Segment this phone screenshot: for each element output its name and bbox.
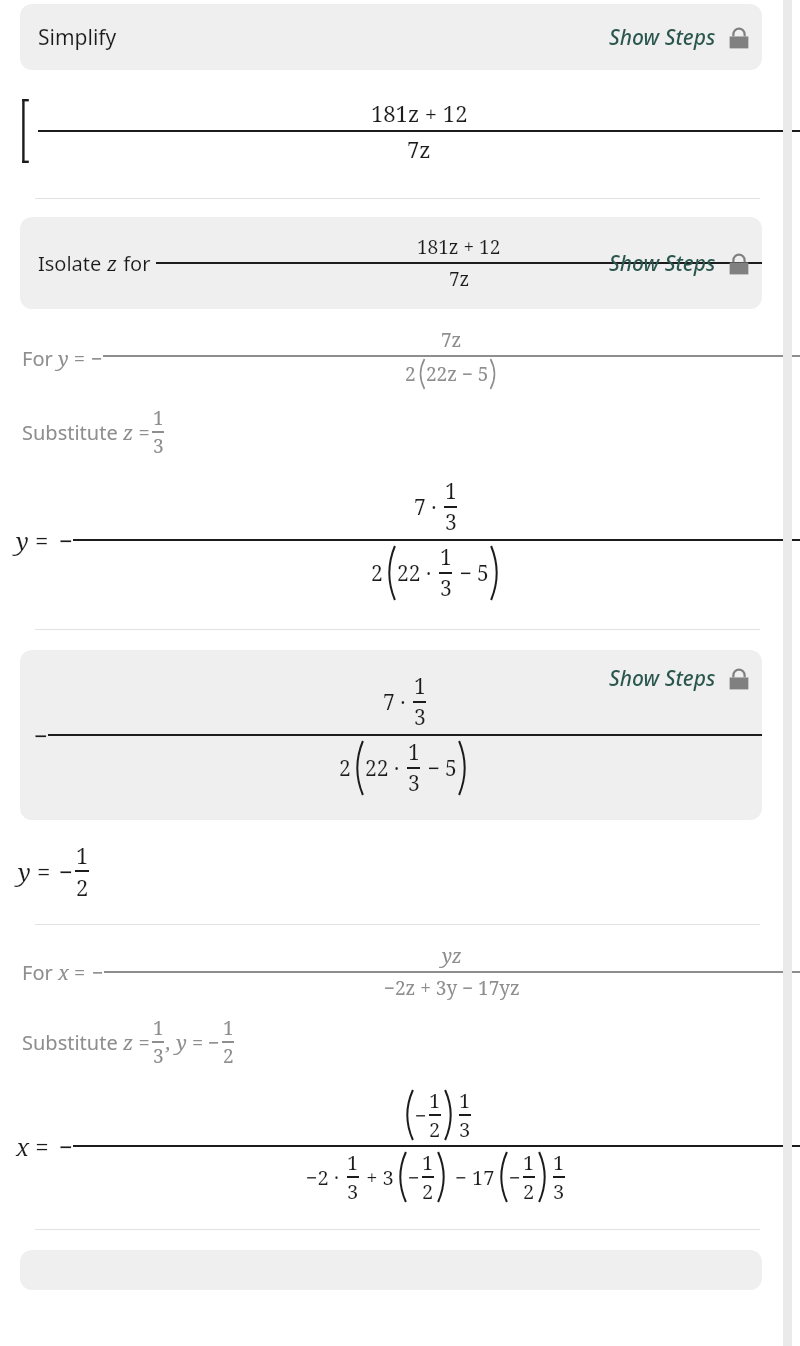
staticText: 22 · xyxy=(397,559,437,588)
other: Locked xyxy=(726,25,752,51)
staticText: − 5 xyxy=(422,754,457,783)
staticText: − xyxy=(408,1164,420,1191)
staticText: 7z xyxy=(441,327,462,353)
staticText: − xyxy=(59,524,73,557)
staticText: Substitute xyxy=(22,419,123,446)
staticText: 1 xyxy=(459,1087,471,1114)
staticText: yz xyxy=(442,943,462,969)
staticText: y = xyxy=(58,345,85,372)
staticText: + 3 xyxy=(361,1164,394,1191)
staticText: 7z xyxy=(407,134,431,164)
staticText: 2 xyxy=(405,361,416,387)
staticText: 2 xyxy=(429,1116,441,1143)
staticText: 181z + 12 xyxy=(417,234,501,260)
staticText: 2 xyxy=(223,1043,234,1069)
staticText: − xyxy=(208,1029,220,1056)
staticText: 1 xyxy=(76,840,89,870)
staticText: 1 xyxy=(153,1015,164,1041)
staticText: 3 xyxy=(347,1178,359,1205)
button[interactable]: Show Steps xyxy=(609,249,752,278)
staticText: 3 xyxy=(440,574,452,603)
staticText: 3 xyxy=(459,1116,471,1143)
staticText: x = xyxy=(58,959,86,986)
staticText: 1 xyxy=(422,1149,434,1176)
staticText: 3 xyxy=(153,433,164,459)
staticText: 181z + 12 xyxy=(371,98,468,128)
staticText: , y = xyxy=(166,1029,204,1056)
staticText: 3 xyxy=(153,1043,164,1069)
staticText: 2 xyxy=(371,559,383,588)
staticText: Show Steps xyxy=(609,23,716,52)
staticText: 22 · xyxy=(365,754,405,783)
staticText: y = xyxy=(16,524,49,557)
staticText: 1 xyxy=(223,1015,234,1041)
staticText: 1 xyxy=(408,738,420,767)
staticText: Simplify xyxy=(38,23,117,52)
staticText: 7 · xyxy=(383,688,411,717)
staticText: −2z + 3y − 17yz xyxy=(384,975,520,1001)
staticText: z = xyxy=(123,419,150,446)
staticText: − xyxy=(59,1130,73,1163)
staticText: 1 xyxy=(153,405,164,431)
staticText: Isolate xyxy=(38,250,107,277)
staticText: z = xyxy=(123,1029,150,1056)
staticText: For xyxy=(22,959,58,986)
staticText: 1 xyxy=(414,672,426,701)
staticText: 1 xyxy=(553,1149,565,1176)
staticText: 3 xyxy=(414,703,426,732)
staticText: 7z xyxy=(449,266,470,292)
staticText: − xyxy=(92,959,104,986)
staticText: 1 xyxy=(347,1149,359,1176)
staticText: z xyxy=(107,250,118,277)
staticText: Show Steps xyxy=(609,664,716,693)
button[interactable]: Simplify xyxy=(20,4,762,70)
staticText: 22z − 5 xyxy=(426,361,489,387)
staticText: − xyxy=(415,1102,427,1129)
staticText: y = xyxy=(18,855,51,888)
staticText: − 5 xyxy=(454,559,489,588)
staticText: 1 xyxy=(429,1087,441,1114)
staticText: 2 xyxy=(339,754,351,783)
staticText: For xyxy=(22,345,58,372)
button[interactable]: Isolate xyxy=(20,217,762,309)
staticText: Show Steps xyxy=(609,249,716,278)
staticText: 2 xyxy=(76,872,89,902)
staticText: − 17 xyxy=(450,1164,495,1191)
staticText: − xyxy=(34,719,48,752)
staticText: − xyxy=(59,855,73,888)
staticText: −2 · xyxy=(306,1164,345,1191)
button[interactable]: Show Steps xyxy=(609,664,752,693)
staticText: 3 xyxy=(553,1178,565,1205)
staticText: 1 xyxy=(440,543,452,572)
staticText: − xyxy=(91,345,103,372)
staticText: 3 xyxy=(408,769,420,798)
staticText: 7 · xyxy=(414,493,442,522)
button[interactable]: Show Steps xyxy=(609,23,752,52)
staticText: x = xyxy=(16,1130,49,1163)
button[interactable]: − xyxy=(20,650,762,820)
staticText: 2 xyxy=(523,1178,535,1205)
other: Locked xyxy=(726,251,752,277)
staticText: 1 xyxy=(523,1149,535,1176)
staticText: 3 xyxy=(445,508,457,537)
staticText: − xyxy=(509,1164,521,1191)
staticText: for xyxy=(118,250,156,277)
other: Locked xyxy=(726,666,752,692)
staticText: Substitute xyxy=(22,1029,123,1056)
staticText: 1 xyxy=(445,477,457,506)
staticText: 2 xyxy=(422,1178,434,1205)
